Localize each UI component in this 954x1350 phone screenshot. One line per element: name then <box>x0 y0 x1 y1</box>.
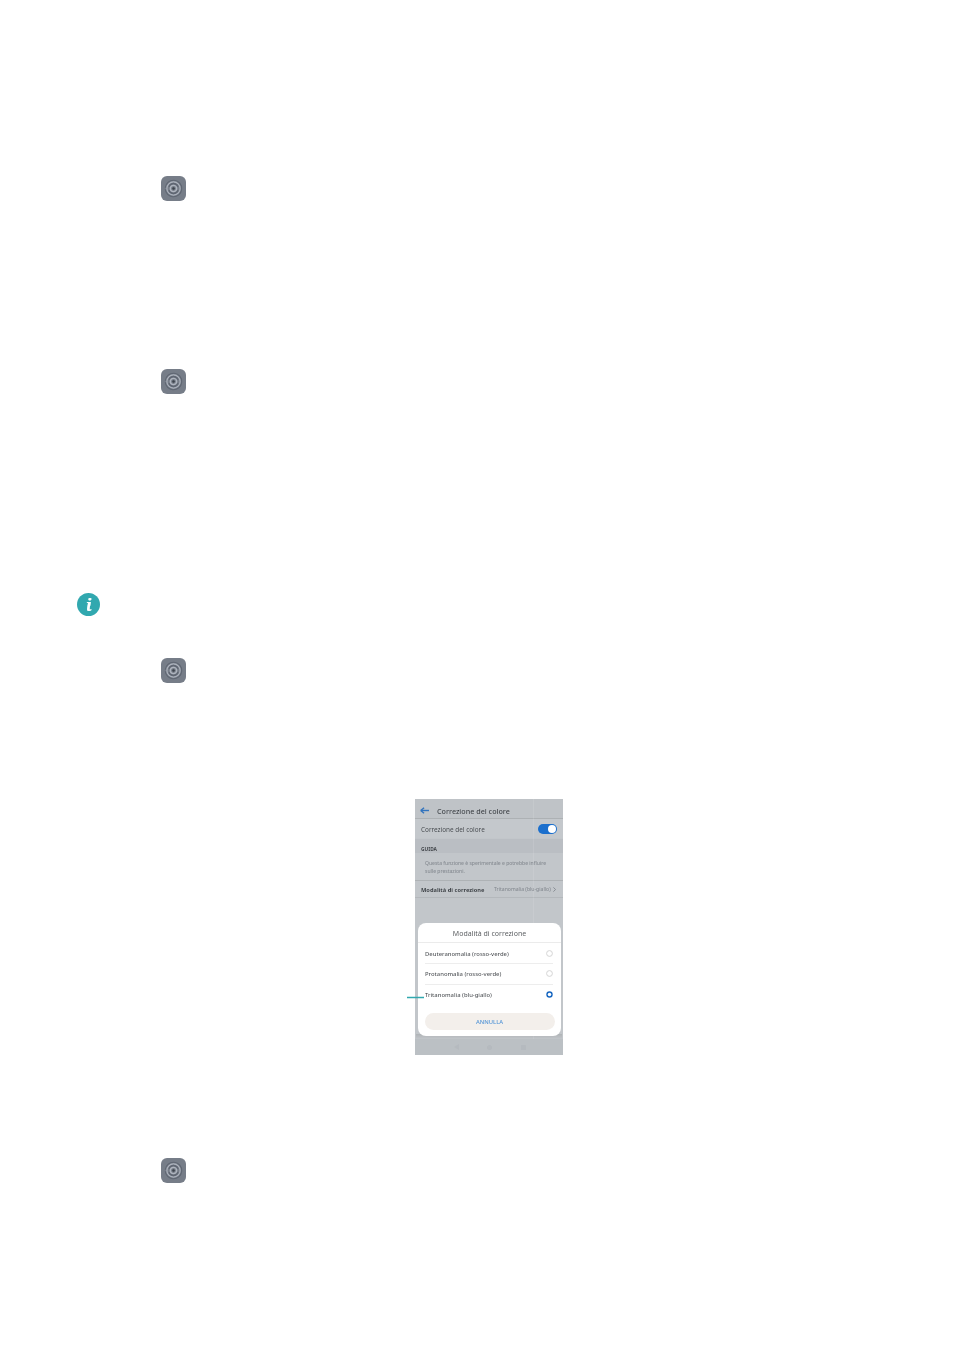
button[interactable]: Settings <box>161 658 186 683</box>
staticText: ANNULLA <box>476 1018 504 1026</box>
staticText: GUIDA <box>421 846 438 853</box>
button[interactable]: Modalità di correzione <box>415 881 563 897</box>
staticText: i <box>86 594 92 616</box>
staticText: Modalità di correzione <box>421 886 485 894</box>
button[interactable]: Color correction toggle <box>538 824 557 834</box>
staticText: Tritanomalia (blu-giallo) <box>425 991 492 999</box>
staticText: Correzione del colore <box>437 806 510 816</box>
button[interactable]: Information <box>77 593 100 616</box>
staticText: Questa funzione è sperimentale e potrebb… <box>425 860 547 874</box>
staticText: Protanomalia (rosso-verde) <box>425 970 502 978</box>
button[interactable]: Back <box>417 803 432 817</box>
button[interactable]: ANNULLA <box>425 1013 555 1030</box>
button[interactable]: Settings <box>161 1158 186 1183</box>
button[interactable]: Settings <box>161 176 186 201</box>
staticText: Deuteranomalia (rosso-verde) <box>425 950 509 958</box>
button[interactable]: Tritanomalia (blu-giallo) <box>418 984 561 1005</box>
staticText: Modalità di correzione <box>418 929 561 939</box>
button[interactable]: Protanomalia (rosso-verde) <box>418 963 561 984</box>
staticText: Tritanomalia (blu-giallo) <box>494 886 551 893</box>
button[interactable]: Settings <box>161 369 186 394</box>
staticText: Correzione del colore <box>421 825 485 834</box>
button[interactable]: Deuteranomalia (rosso-verde) <box>418 943 561 964</box>
